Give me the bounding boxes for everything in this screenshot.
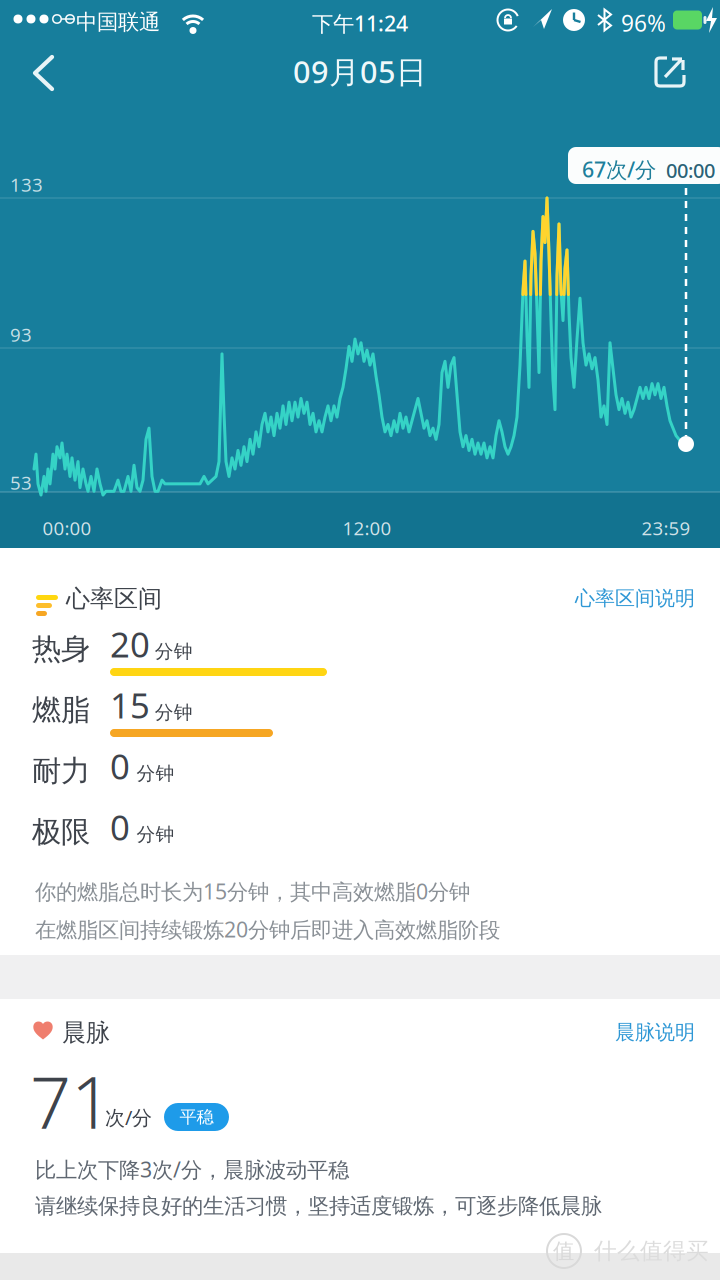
staticText: 次/分 <box>105 1104 152 1131</box>
staticText: 请继续保持良好的生活习惯，坚持适度锻炼，可逐步降低晨脉 <box>35 1193 602 1219</box>
staticText: 值 <box>553 1238 574 1264</box>
staticText: 71 <box>30 1053 112 1149</box>
button[interactable]: 心率区间说明 <box>575 586 695 611</box>
staticText: 分钟 <box>155 640 193 663</box>
staticText: 分钟 <box>136 823 174 846</box>
staticText: 你的燃脂总时长为15分钟，其中高效燃脂0分钟 <box>35 877 470 905</box>
staticText: 比上次下降3次/分，晨脉波动平稳 <box>35 1155 349 1183</box>
staticText: 133 <box>10 172 43 197</box>
staticText: 什么值得买 <box>594 1237 709 1265</box>
staticText: 在燃脂区间持续锻炼20分钟后即进入高效燃脂阶段 <box>35 915 500 943</box>
staticText: 下午11:24 <box>312 9 408 37</box>
staticText: 00:00 <box>42 516 91 540</box>
staticText: 热身 <box>32 631 90 667</box>
staticText: 晨脉说明 <box>615 1020 695 1045</box>
staticText: 15 <box>110 682 150 728</box>
staticText: 分钟 <box>155 701 193 724</box>
button[interactable]: 分享 <box>653 55 687 89</box>
staticText: 耐力 <box>32 753 90 789</box>
staticText: 0 <box>110 743 130 789</box>
staticText: 极限 <box>32 814 90 850</box>
staticText: 09月05日 <box>293 51 427 92</box>
button[interactable]: 晨脉说明 <box>615 1020 695 1045</box>
staticText: 20 <box>110 621 150 667</box>
staticText: 53 <box>10 470 32 495</box>
staticText: 12:00 <box>342 516 391 540</box>
staticText: 93 <box>10 322 32 347</box>
staticText: 23:59 <box>641 516 690 540</box>
button[interactable]: 返回 <box>18 44 74 102</box>
staticText: 心率区间说明 <box>575 586 695 611</box>
staticText: 晨脉 <box>62 1018 110 1047</box>
staticText: 心率区间 <box>66 584 162 613</box>
staticText: 平稳 <box>179 1106 213 1128</box>
staticText: 燃脂 <box>32 692 90 728</box>
staticText: 分钟 <box>136 762 174 785</box>
staticText: 0 <box>110 804 130 850</box>
staticText: 00:00 <box>666 157 715 184</box>
staticText: 中国联通 <box>76 9 160 35</box>
staticText: 96% <box>621 8 666 38</box>
staticText: 67次/分 <box>582 155 656 183</box>
